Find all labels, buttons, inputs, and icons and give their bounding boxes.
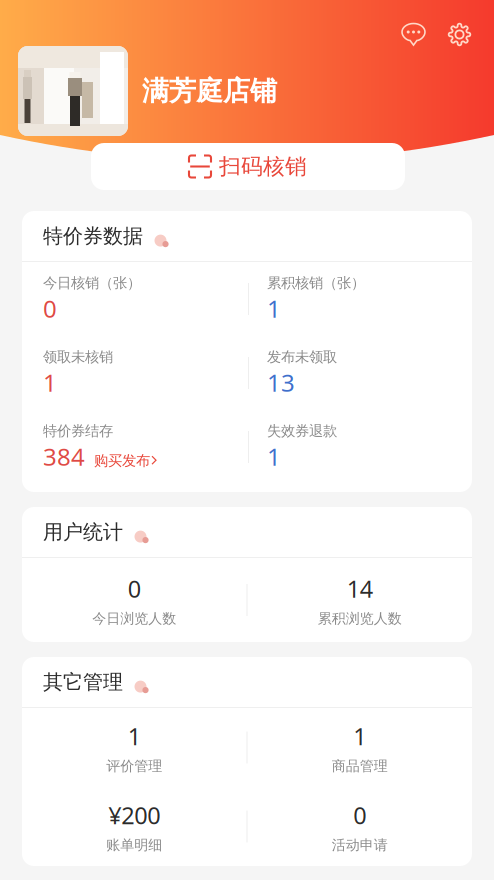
staticText: 发布未领取 [267,348,337,366]
staticText: 1 [267,440,281,473]
button[interactable]: 0 [22,558,246,642]
staticText: 累积浏览人数 [318,610,402,627]
staticText: 商品管理 [332,757,388,775]
button[interactable]: 1 [22,708,246,787]
staticText: 1 [128,720,141,752]
staticText: ¥200 [108,799,160,831]
button[interactable]: Settings [443,18,476,51]
staticText: 评价管理 [106,757,162,775]
staticText: 特价券数据 [43,223,143,249]
staticText: 今日核销（张） [43,274,141,292]
staticText: 0 [128,573,141,605]
staticText: 1 [267,292,281,325]
staticText: 特价券结存 [43,422,113,440]
staticText: 0 [353,799,366,831]
staticText: 13 [267,366,295,399]
staticText: 累积核销（张） [267,274,365,292]
button[interactable]: ¥200 [22,787,246,866]
staticText: 账单明细 [106,836,162,854]
button[interactable]: 1 [247,708,472,787]
staticText: 1 [43,366,57,399]
staticText: 用户统计 [43,519,123,545]
button[interactable]: 0 [247,787,472,866]
staticText: 满芳庭店铺 [142,74,277,108]
staticText: 今日浏览人数 [92,610,176,627]
staticText: 扫码核销 [219,153,307,180]
staticText: 14 [347,573,373,605]
button[interactable]: 14 [247,558,472,642]
button[interactable]: 扫码核销 [91,143,405,190]
staticText: 0 [43,292,57,325]
staticText: 384 [43,440,85,473]
staticText: 活动申请 [332,836,388,854]
staticText: 失效券退款 [267,422,337,440]
button[interactable]: Messages [397,18,430,51]
button[interactable]: 购买发布 [94,452,158,473]
staticText: 其它管理 [43,669,123,695]
staticText: 1 [353,720,366,752]
staticText: 购买发布 [94,452,150,470]
staticText: 领取未核销 [43,348,113,366]
